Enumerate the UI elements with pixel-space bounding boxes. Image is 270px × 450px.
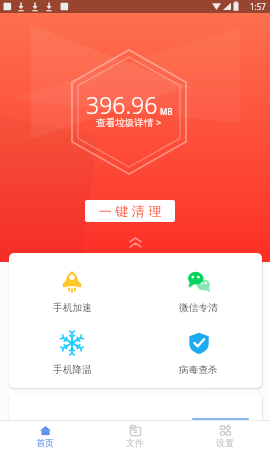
staticText: 设置	[216, 437, 234, 448]
staticText: 首页	[36, 437, 54, 448]
staticText: 手机加速	[53, 302, 92, 314]
button[interactable]: 文件	[90, 421, 180, 450]
button[interactable]: 手机加速	[9, 270, 135, 314]
staticText: 文件	[126, 437, 144, 448]
button[interactable]: 设置	[180, 421, 270, 450]
button[interactable]: 首页	[0, 421, 90, 450]
button[interactable]: 病毒查杀	[135, 332, 262, 376]
staticText: 微信专清	[179, 302, 218, 314]
staticText: MB	[160, 106, 173, 117]
button[interactable]: 微信专清	[135, 270, 262, 314]
staticText: 396.96	[86, 89, 158, 120]
button[interactable]: 查看垃圾详情 >	[92, 115, 166, 130]
button[interactable]: 手机降温	[9, 332, 135, 376]
button[interactable]: 一键清理	[85, 200, 175, 222]
other: Expand	[130, 238, 141, 247]
staticText: 病毒查杀	[179, 364, 218, 376]
staticText: 一键清理	[97, 203, 163, 219]
staticText: 查看垃圾详情 >	[96, 116, 162, 129]
staticText: 1:57	[250, 1, 266, 12]
staticText: 手机降温	[53, 364, 92, 376]
